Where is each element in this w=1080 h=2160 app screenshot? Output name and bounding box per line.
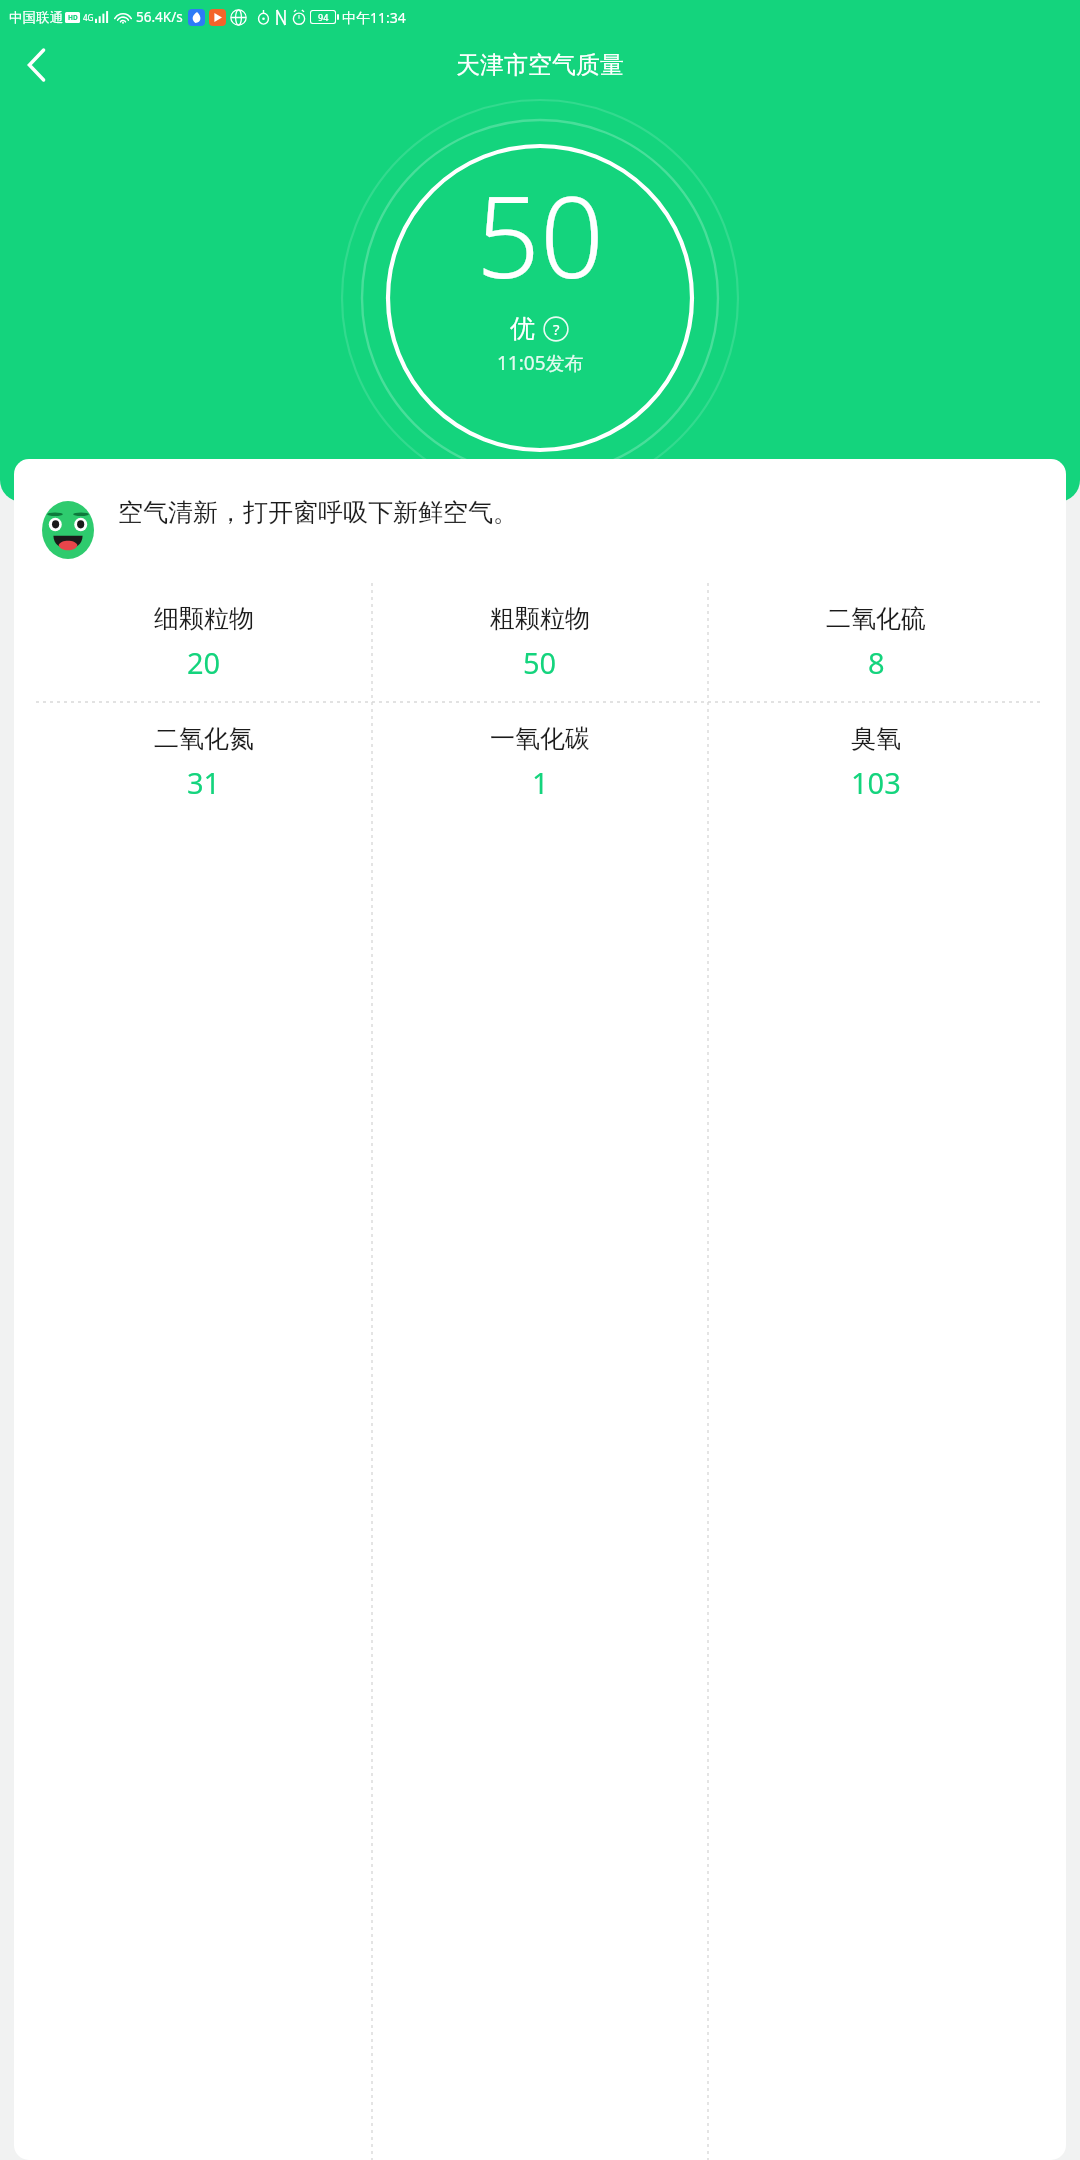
staticText: 20 [187, 643, 221, 682]
button[interactable]: Back [8, 37, 64, 93]
button[interactable]: 二氧化硫 [708, 583, 1044, 702]
staticText: HD [68, 13, 78, 22]
staticText: 50 [476, 158, 604, 311]
button[interactable]: 细颗粒物 [36, 583, 372, 702]
staticText: 粗颗粒物 [490, 603, 590, 634]
staticText: 94 [318, 11, 329, 23]
staticText: 臭氧 [851, 723, 901, 754]
staticText: 一氧化碳 [490, 723, 590, 754]
button[interactable]: Help about AQI level [542, 315, 570, 343]
button[interactable]: 二氧化氮 [36, 703, 372, 822]
staticText: 中午11:34 [342, 8, 406, 27]
staticText: 50 [523, 643, 557, 682]
staticText: 4G [83, 12, 94, 23]
staticText: 二氧化氮 [154, 723, 254, 754]
staticText: 11:05发布 [497, 350, 584, 376]
staticText: 中国联通 [9, 9, 63, 26]
staticText: 8 [868, 643, 885, 682]
staticText: 二氧化硫 [826, 603, 926, 634]
button[interactable]: 粗颗粒物 [372, 583, 708, 702]
staticText: 优 [510, 313, 535, 344]
staticText: ? [553, 319, 560, 339]
staticText: 1 [532, 763, 549, 802]
staticText: 31 [187, 763, 221, 802]
staticText: 天津市空气质量 [456, 50, 624, 80]
button[interactable]: 空气清新，打开窗呼吸下新鲜空气。 [42, 497, 1032, 559]
staticText: 56.4K/s [136, 8, 183, 26]
button[interactable]: 臭氧 [708, 703, 1044, 822]
staticText: 103 [851, 763, 901, 802]
staticText: 细颗粒物 [154, 603, 254, 634]
staticText: 空气清新，打开窗呼吸下新鲜空气。 [118, 497, 518, 528]
button[interactable]: 一氧化碳 [372, 703, 708, 822]
